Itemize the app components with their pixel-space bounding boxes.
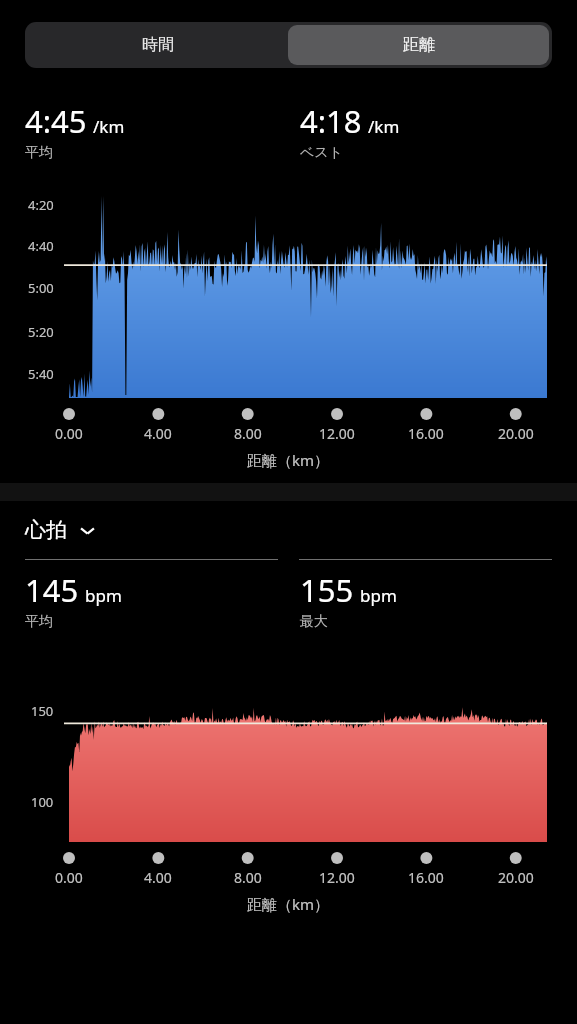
staticText: bpm — [360, 584, 397, 607]
staticText: 4:40 — [28, 237, 54, 255]
staticText: 最大 — [300, 613, 328, 631]
staticText: 4:18 — [300, 100, 362, 142]
staticText: bpm — [85, 584, 122, 607]
staticText: 5:00 — [28, 279, 54, 297]
staticText: 155 — [300, 569, 354, 611]
staticText: 平均 — [25, 613, 53, 631]
staticText: 20.00 — [498, 424, 534, 443]
staticText: ベスト — [300, 144, 343, 162]
staticText: 16.00 — [408, 424, 444, 443]
other: Expand heart rate details — [78, 521, 97, 540]
staticText: 150 — [31, 702, 54, 720]
staticText: 4.00 — [144, 868, 172, 887]
staticText: 4:20 — [28, 196, 54, 214]
staticText: 8.00 — [234, 424, 262, 443]
staticText: 12.00 — [319, 424, 355, 443]
staticText: 距離（km） — [247, 894, 330, 914]
staticText: 100 — [31, 793, 54, 811]
staticText: 12.00 — [319, 868, 355, 887]
button[interactable]: 心拍 — [25, 517, 97, 543]
staticText: 20.00 — [498, 868, 534, 887]
staticText: /km — [93, 115, 125, 138]
staticText: 4.00 — [144, 424, 172, 443]
staticText: 距離（km） — [247, 450, 330, 470]
staticText: 8.00 — [234, 868, 262, 887]
staticText: 5:40 — [28, 365, 54, 383]
staticText: /km — [368, 115, 400, 138]
button[interactable]: 距離 — [288, 25, 549, 65]
staticText: 距離 — [403, 35, 435, 55]
staticText: 心拍 — [25, 517, 67, 543]
button[interactable]: 時間 — [28, 25, 288, 65]
staticText: 時間 — [142, 35, 174, 55]
staticText: 4:45 — [25, 100, 87, 142]
staticText: 0.00 — [55, 424, 83, 443]
staticText: 平均 — [25, 144, 53, 162]
staticText: 16.00 — [408, 868, 444, 887]
staticText: 0.00 — [55, 868, 83, 887]
staticText: 5:20 — [28, 323, 54, 341]
staticText: 145 — [25, 569, 79, 611]
